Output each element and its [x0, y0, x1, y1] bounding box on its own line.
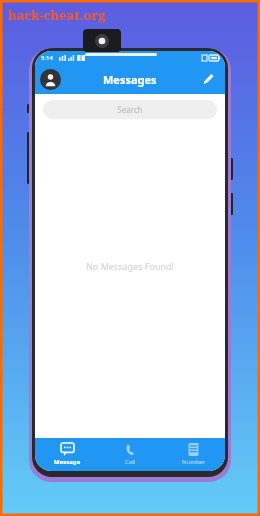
button[interactable]: Message: [35, 438, 99, 471]
staticText: Number: [182, 458, 206, 466]
button[interactable]: Call: [99, 438, 162, 471]
staticText: Messages: [103, 72, 157, 87]
button[interactable]: Compose message: [197, 68, 219, 90]
staticText: No Messages Found!: [86, 260, 174, 272]
staticText: Call: [125, 458, 136, 466]
button[interactable]: Number: [162, 438, 225, 471]
button[interactable]: Profile: [40, 69, 61, 90]
staticText: Message: [54, 458, 81, 466]
staticText: 5:14: [41, 54, 53, 62]
staticText: hack-cheat.org: [8, 6, 106, 24]
staticText: Search: [117, 104, 143, 115]
button[interactable]: Search: [43, 100, 217, 119]
